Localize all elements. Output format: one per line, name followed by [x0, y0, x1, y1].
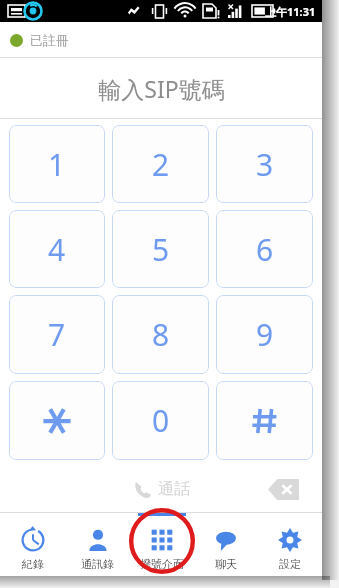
- staticText: 1: [48, 144, 66, 185]
- button[interactable]: 7: [9, 295, 105, 374]
- button[interactable]: 8: [112, 295, 209, 374]
- staticText: 通話: [158, 479, 190, 499]
- staticText: 4: [48, 229, 66, 270]
- staticText: 0: [152, 400, 170, 441]
- button[interactable]: 聊天: [194, 513, 258, 576]
- staticText: 6: [256, 229, 274, 270]
- staticText: 聊天: [215, 557, 237, 571]
- button[interactable]: 9: [216, 295, 313, 374]
- button[interactable]: [9, 381, 105, 460]
- staticText: 撥號介面: [140, 557, 184, 571]
- button[interactable]: Backspace: [266, 476, 300, 502]
- button[interactable]: 5: [112, 210, 209, 288]
- staticText: 8: [152, 314, 170, 355]
- button[interactable]: 3: [216, 125, 313, 203]
- button[interactable]: 設定: [258, 513, 322, 576]
- button[interactable]: 2: [112, 125, 209, 203]
- button[interactable]: [216, 381, 313, 460]
- button[interactable]: 1: [9, 125, 105, 203]
- button[interactable]: 撥號介面: [130, 513, 194, 576]
- staticText: 9: [256, 314, 274, 355]
- staticText: 2: [152, 144, 170, 185]
- button[interactable]: 4: [9, 210, 105, 288]
- staticText: 通訊錄: [81, 557, 114, 571]
- staticText: 7: [48, 314, 66, 355]
- button[interactable]: 0: [112, 381, 209, 460]
- staticText: 輸入SIP號碼: [98, 73, 225, 104]
- button[interactable]: 紀錄: [0, 513, 65, 576]
- button[interactable]: 6: [216, 210, 313, 288]
- staticText: 上午11:31: [265, 4, 316, 19]
- staticText: 紀錄: [22, 557, 44, 571]
- staticText: 5: [152, 229, 170, 270]
- staticText: 3: [256, 144, 274, 185]
- button[interactable]: 輸入SIP號碼: [0, 58, 322, 118]
- staticText: 設定: [279, 557, 301, 571]
- button[interactable]: 通話: [115, 473, 208, 505]
- staticText: 已註冊: [30, 32, 69, 48]
- button[interactable]: 通訊錄: [65, 513, 130, 576]
